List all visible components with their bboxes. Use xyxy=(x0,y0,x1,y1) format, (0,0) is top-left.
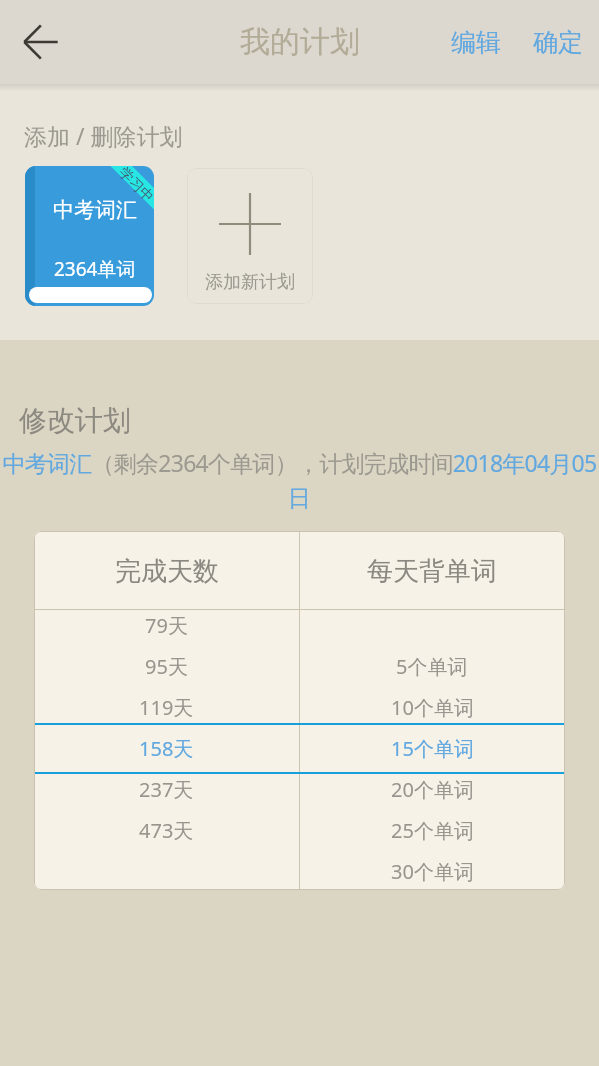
staticText: 25个单词 xyxy=(391,817,474,844)
button[interactable]: 10个单词 xyxy=(300,687,564,728)
staticText: 学习中 xyxy=(115,166,154,206)
staticText: 修改计划 xyxy=(19,403,131,438)
staticText: 编辑 xyxy=(451,27,501,58)
button[interactable]: 确定 xyxy=(517,13,599,72)
staticText: 237天 xyxy=(139,776,194,803)
staticText: 完成天数 xyxy=(115,555,219,588)
staticText: 119天 xyxy=(139,694,194,721)
staticText: 日 xyxy=(0,484,599,513)
staticText: 158天 xyxy=(139,735,194,762)
staticText: 95天 xyxy=(145,653,188,680)
button[interactable]: 95天 xyxy=(34,646,299,687)
staticText: 添加 / 删除计划 xyxy=(24,120,183,151)
staticText: 每天背单词 xyxy=(367,555,497,588)
staticText: 20个单词 xyxy=(391,776,474,803)
staticText: 30个单词 xyxy=(391,858,474,885)
button[interactable]: 473天 xyxy=(34,810,299,851)
button[interactable]: 25个单词 xyxy=(300,810,564,851)
button[interactable]: 20个单词 xyxy=(300,769,564,810)
button[interactable]: 237天 xyxy=(34,769,299,810)
button[interactable]: 158天 xyxy=(34,728,299,769)
button[interactable]: 30个单词 xyxy=(300,851,564,890)
staticText: 确定 xyxy=(533,27,583,58)
staticText: 中考词汇 xyxy=(53,197,137,223)
button[interactable]: 5个单词 xyxy=(300,646,564,687)
button[interactable]: Back xyxy=(12,13,70,71)
button[interactable]: 15个单词 xyxy=(300,728,564,769)
staticText: 10个单词 xyxy=(391,694,474,721)
staticText: 79天 xyxy=(145,612,188,639)
staticText: 我的计划 xyxy=(240,23,360,61)
staticText: 473天 xyxy=(139,817,194,844)
staticText: 添加新计划 xyxy=(205,271,295,294)
staticText: 15个单词 xyxy=(391,735,474,762)
button[interactable]: 添加新计划 xyxy=(187,168,313,304)
button[interactable]: 学习中 xyxy=(25,166,154,306)
button[interactable]: 119天 xyxy=(34,687,299,728)
staticText: 2364单词 xyxy=(54,256,136,282)
staticText: 中考词汇（剩余2364个单词），计划完成时间2018年04月05 xyxy=(0,447,599,478)
staticText: 5个单词 xyxy=(396,653,468,680)
button[interactable]: 79天 xyxy=(34,605,299,646)
button[interactable]: 编辑 xyxy=(439,13,517,72)
